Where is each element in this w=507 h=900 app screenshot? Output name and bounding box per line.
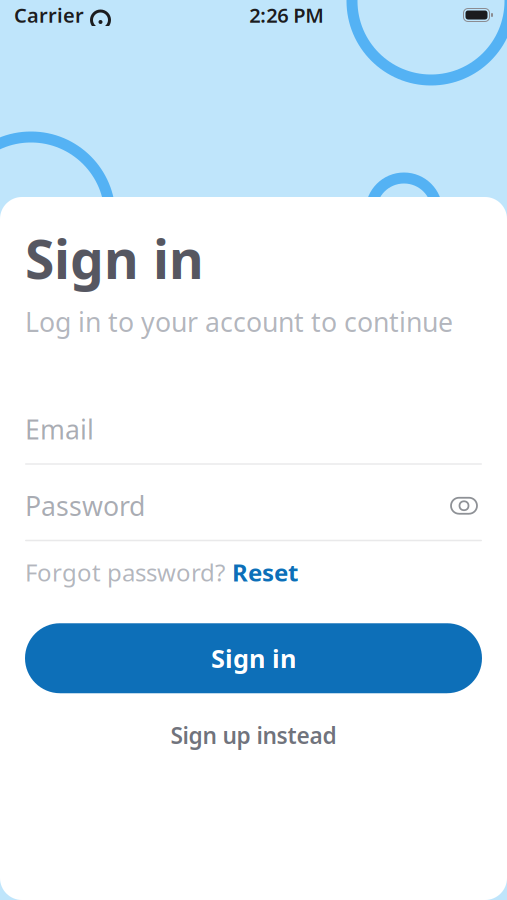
staticText: Email [25,411,94,447]
staticText: Sign up instead [170,720,336,750]
staticText: Carrier [14,2,84,28]
button[interactable]: Forgot password? [25,559,298,585]
button[interactable]: Sign in [25,623,482,693]
staticText: 2:26 PM [249,2,324,28]
staticText: Forgot password? [25,556,225,588]
staticText: Sign in [25,223,204,294]
staticText: Password [25,488,145,523]
button[interactable]: Show password [446,491,482,521]
staticText: Sign in [211,641,296,675]
button[interactable]: Sign up instead [25,722,482,748]
staticText: Log in to your account to continue [25,304,453,339]
staticText: Reset [232,556,298,588]
